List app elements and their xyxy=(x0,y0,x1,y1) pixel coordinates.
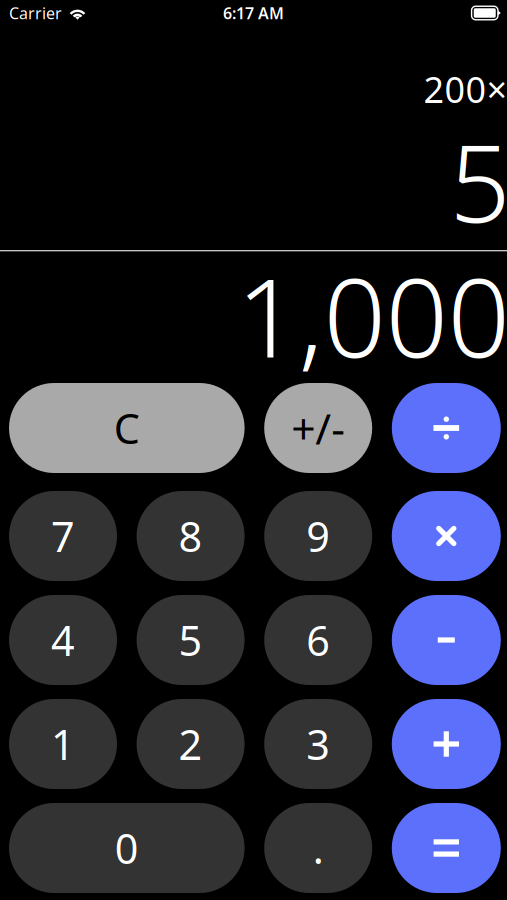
staticText: 6:17 AM xyxy=(223,2,284,24)
button[interactable]: 1 xyxy=(9,699,117,789)
staticText: . xyxy=(313,821,324,875)
button[interactable]: 6 xyxy=(264,595,372,685)
button[interactable]: 0 xyxy=(9,803,245,893)
button[interactable]: 9 xyxy=(264,491,372,581)
button[interactable]: 5 xyxy=(137,595,245,685)
button[interactable]: 8 xyxy=(137,491,245,581)
button[interactable]: +/- xyxy=(264,383,372,473)
staticText: 3 xyxy=(306,717,330,771)
staticText: 5 xyxy=(449,110,507,252)
staticText: 200× xyxy=(423,65,507,113)
staticText: Carrier xyxy=(9,2,62,24)
button[interactable]: Add xyxy=(392,699,501,789)
button[interactable]: 2 xyxy=(137,699,245,789)
staticText: 1 xyxy=(51,717,75,771)
staticText: 6 xyxy=(306,613,330,667)
button[interactable]: Divide xyxy=(392,383,501,473)
staticText: +/- xyxy=(291,400,345,456)
staticText: C xyxy=(114,401,140,455)
staticText: 5 xyxy=(179,613,203,667)
staticText: 0 xyxy=(115,821,139,875)
staticText: 8 xyxy=(179,509,203,563)
staticText: 7 xyxy=(51,509,75,563)
staticText: 1,000 xyxy=(236,242,507,388)
button[interactable]: Equals xyxy=(392,803,501,893)
button[interactable]: 7 xyxy=(9,491,117,581)
staticText: 2 xyxy=(179,717,203,771)
button[interactable]: 4 xyxy=(9,595,117,685)
button[interactable]: C xyxy=(9,383,245,473)
button[interactable]: 3 xyxy=(264,699,372,789)
staticText: 9 xyxy=(306,509,330,563)
staticText: 4 xyxy=(51,613,75,667)
button[interactable]: Subtract xyxy=(392,595,501,685)
button[interactable]: Multiply xyxy=(392,491,501,581)
button[interactable]: . xyxy=(264,803,372,893)
